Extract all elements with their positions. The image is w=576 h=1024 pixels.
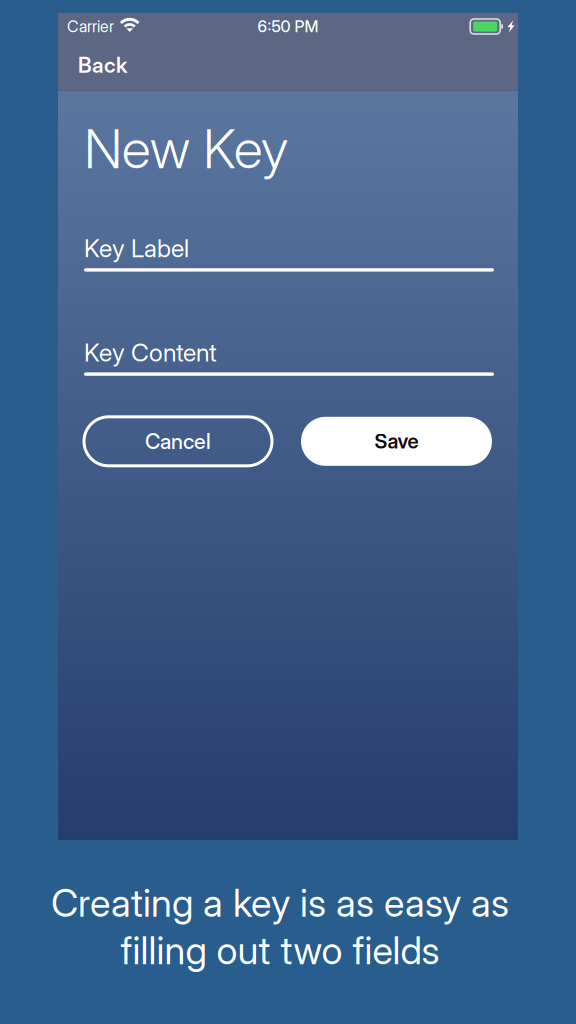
button[interactable]: Cancel: [84, 417, 272, 466]
staticText: 6:50 PM: [257, 17, 318, 36]
staticText: Save: [374, 429, 418, 453]
staticText: Key Label: [84, 233, 189, 263]
button[interactable]: Save: [301, 417, 492, 466]
staticText: Carrier: [67, 17, 114, 36]
button[interactable]: Back: [58, 43, 143, 88]
staticText: Creating a key is as easy as: [51, 880, 509, 926]
staticText: Cancel: [145, 428, 211, 454]
staticText: Back: [78, 52, 127, 78]
staticText: Key Content: [84, 338, 217, 367]
staticText: filling out two fields: [120, 927, 439, 973]
staticText: New Key: [84, 116, 288, 181]
